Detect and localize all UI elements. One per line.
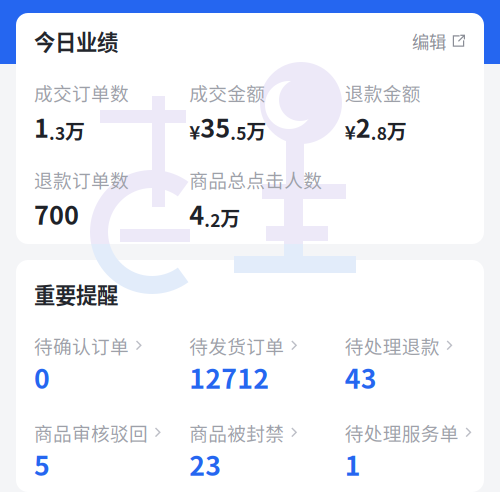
button[interactable]: 编辑 xyxy=(412,30,466,52)
staticText: 编辑 xyxy=(412,28,446,54)
staticText: 成交金额 xyxy=(189,79,265,106)
staticText: 万 xyxy=(220,203,240,232)
staticText: .8 xyxy=(371,120,387,145)
staticText: 1 xyxy=(34,108,49,145)
staticText: ¥ xyxy=(189,118,200,145)
staticText: 700 xyxy=(34,195,79,232)
staticText: 4 xyxy=(189,195,204,232)
staticText: 商品被封禁 xyxy=(189,419,284,446)
staticText: 万 xyxy=(65,116,85,145)
staticText: 2 xyxy=(356,108,371,145)
staticText: 退款订单数 xyxy=(34,166,129,193)
staticText: 商品审核驳回 xyxy=(34,419,148,446)
staticText: 商品总点击人数 xyxy=(189,166,322,193)
staticText: .5 xyxy=(230,120,246,145)
button[interactable]: 商品审核驳回 xyxy=(34,423,189,477)
staticText: 万 xyxy=(246,116,266,145)
button[interactable]: 待处理退款 xyxy=(345,336,500,390)
staticText: 成交订单数 xyxy=(34,79,129,106)
button[interactable]: 待确认订单 xyxy=(34,336,189,390)
staticText: 万 xyxy=(387,116,407,145)
staticText: 待确认订单 xyxy=(34,332,129,359)
staticText: 待处理退款 xyxy=(345,332,440,359)
staticText: ¥ xyxy=(345,118,356,145)
staticText: 待发货订单 xyxy=(189,332,284,359)
button[interactable]: 商品被封禁 xyxy=(189,423,345,477)
staticText: 0 xyxy=(34,358,50,396)
button[interactable]: 待处理服务单 xyxy=(345,423,500,477)
staticText: 待处理服务单 xyxy=(345,419,459,446)
staticText: 35 xyxy=(200,108,230,145)
staticText: 5 xyxy=(34,445,50,483)
staticText: 1 xyxy=(345,445,361,483)
staticText: .2 xyxy=(204,207,220,232)
staticText: 23 xyxy=(189,445,221,483)
button[interactable]: 待发货订单 xyxy=(189,336,345,390)
staticText: 今日业绩 xyxy=(34,26,118,56)
staticText: 12712 xyxy=(189,358,269,396)
staticText: 43 xyxy=(345,358,377,396)
staticText: 退款金额 xyxy=(345,79,421,106)
staticText: 重要提醒 xyxy=(34,279,118,309)
staticText: .3 xyxy=(49,120,65,145)
